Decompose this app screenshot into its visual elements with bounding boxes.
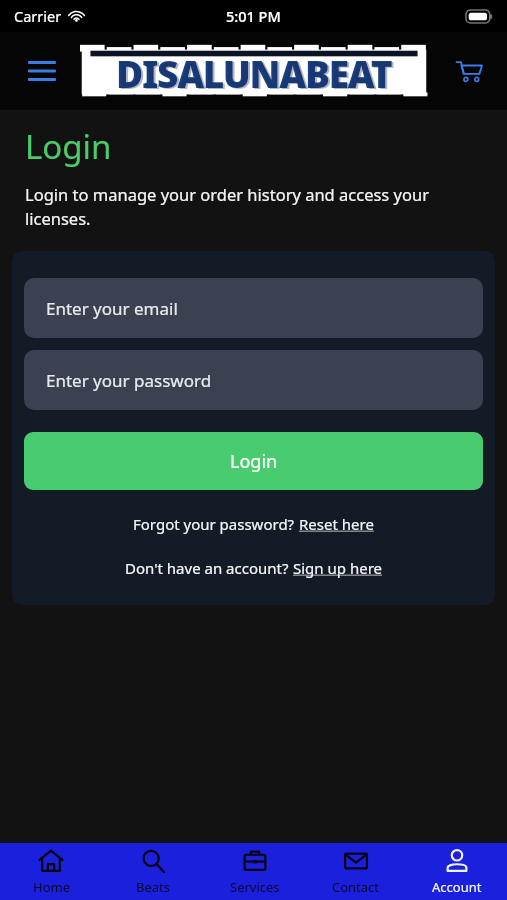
button[interactable]: Services: [204, 843, 305, 900]
staticText: Login to manage your order history and a…: [25, 183, 483, 230]
button[interactable]: Enter your password: [24, 350, 483, 410]
staticText: Home: [33, 878, 70, 896]
staticText: DISALUNABEAT: [118, 49, 394, 99]
staticText: Sign up here: [293, 558, 382, 578]
staticText: Carrier: [14, 6, 62, 26]
staticText: Contact: [332, 878, 380, 896]
button[interactable]: Home: [0, 843, 102, 900]
button[interactable]: Sign up here: [293, 558, 382, 578]
button[interactable]: Menu: [20, 49, 64, 93]
button[interactable]: Enter your email: [24, 278, 483, 338]
staticText: Reset here: [299, 514, 374, 534]
button[interactable]: Beats: [102, 843, 204, 900]
button[interactable]: Cart: [447, 49, 491, 93]
button[interactable]: DISALUNABEAT: [80, 44, 428, 100]
staticText: Login: [25, 124, 112, 169]
staticText: Enter your email: [46, 297, 178, 320]
staticText: Forgot your password?: [133, 514, 299, 534]
staticText: Don't have an account?: [125, 558, 293, 578]
staticText: Login: [230, 449, 278, 474]
button[interactable]: Account: [406, 843, 507, 900]
staticText: Beats: [136, 878, 170, 896]
staticText: Services: [230, 878, 280, 896]
button[interactable]: Reset here: [299, 514, 374, 534]
button[interactable]: Login: [24, 432, 483, 490]
button[interactable]: Contact: [305, 843, 406, 900]
staticText: Account: [432, 878, 482, 896]
staticText: DISALUNABEAT: [116, 48, 392, 98]
staticText: 5:01 PM: [226, 6, 281, 26]
staticText: Enter your password: [46, 369, 212, 392]
